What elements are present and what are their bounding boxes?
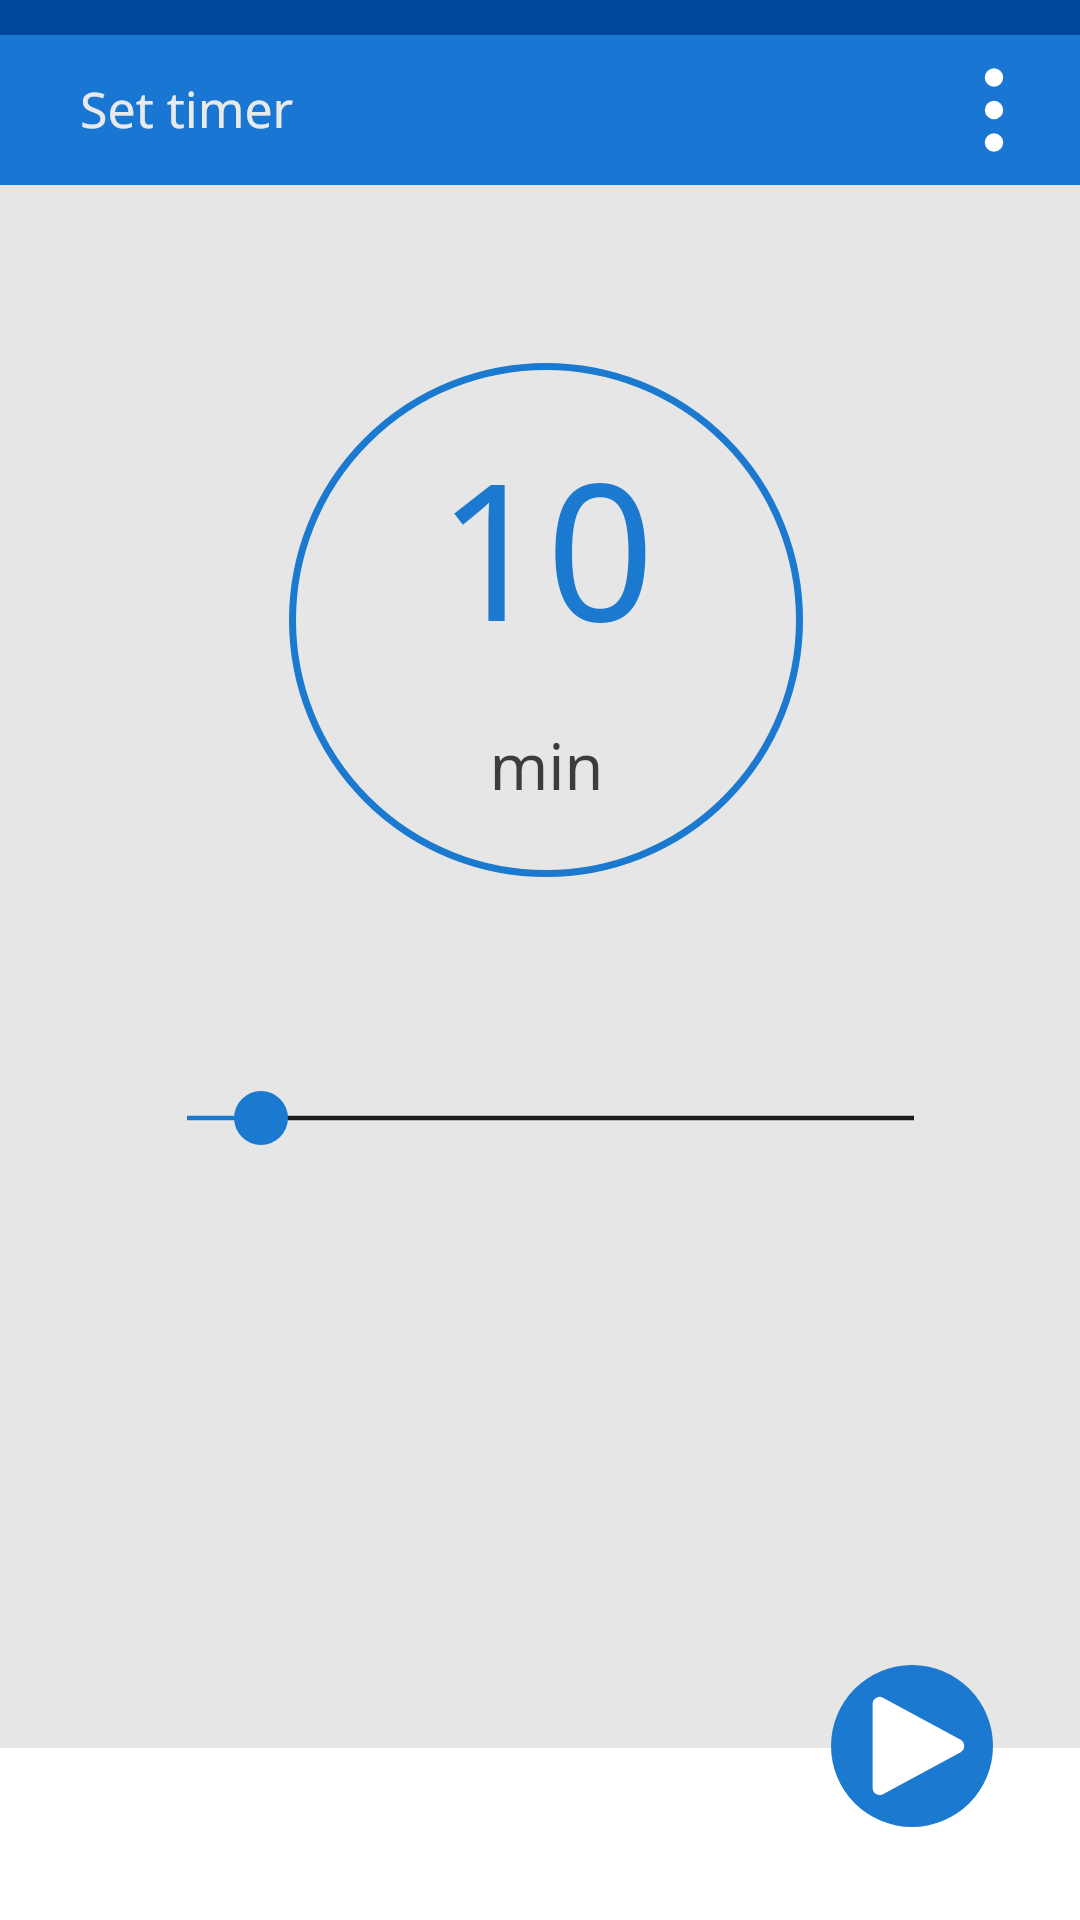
staticText: min [489,723,604,809]
staticText: 10 [437,418,655,677]
button[interactable]: More options [944,43,1044,177]
staticText: Set timer [80,75,294,143]
button[interactable]: 10 [289,363,803,877]
button[interactable]: Timer duration [150,1060,950,1176]
button[interactable]: Start timer [831,1665,993,1827]
